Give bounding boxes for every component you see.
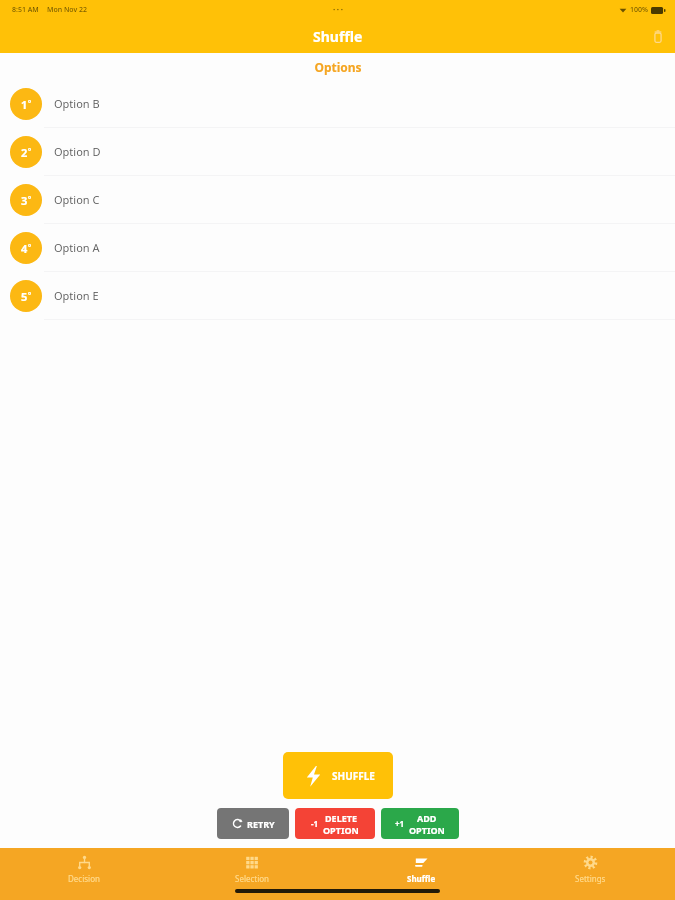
staticText: RETRY xyxy=(247,818,275,830)
staticText: Option B xyxy=(54,96,100,111)
staticText: º xyxy=(28,241,32,252)
staticText: OPTION xyxy=(323,824,359,836)
staticText: DELETE xyxy=(325,812,357,824)
staticText: Option A xyxy=(54,240,100,255)
button[interactable]: 5 xyxy=(0,272,675,320)
button[interactable]: +1 xyxy=(381,808,459,839)
staticText: Settings xyxy=(575,873,606,884)
staticText: +1 xyxy=(395,818,405,829)
staticText: Selection xyxy=(235,873,270,884)
staticText: 1 xyxy=(21,97,28,112)
staticText: -1 xyxy=(311,818,319,829)
staticText: 2 xyxy=(21,145,28,160)
staticText: Mon Nov 22 xyxy=(47,5,87,15)
staticText: Shuffle xyxy=(313,27,363,46)
button[interactable]: Shuffle xyxy=(337,848,506,900)
button[interactable]: SHUFFLE xyxy=(283,752,393,799)
staticText: Option D xyxy=(54,144,101,159)
staticText: OPTION xyxy=(409,824,445,836)
staticText: Options xyxy=(314,59,362,75)
staticText: 5 xyxy=(21,289,28,304)
staticText: º xyxy=(28,289,32,300)
staticText: º xyxy=(28,97,32,108)
button[interactable]: RETRY xyxy=(217,808,289,839)
staticText: • • • xyxy=(333,6,343,14)
staticText: Option C xyxy=(54,192,100,207)
staticText: ADD xyxy=(417,812,437,824)
staticText: º xyxy=(28,193,32,204)
button[interactable]: 3 xyxy=(0,176,675,224)
staticText: 100% xyxy=(630,5,648,15)
button[interactable]: Selection xyxy=(168,848,337,900)
button[interactable]: 4 xyxy=(0,224,675,272)
button[interactable]: Decision xyxy=(0,848,168,900)
button[interactable]: 2 xyxy=(0,128,675,176)
button[interactable]: Settings xyxy=(506,848,675,900)
staticText: 3 xyxy=(21,193,28,208)
staticText: º xyxy=(28,145,32,156)
staticText: Shuffle xyxy=(407,873,436,884)
button[interactable]: 1 xyxy=(0,80,675,128)
button[interactable]: Delete all options xyxy=(641,20,675,53)
button[interactable]: -1 xyxy=(295,808,375,839)
staticText: 4 xyxy=(21,241,28,256)
staticText: Decision xyxy=(68,873,100,884)
staticText: SHUFFLE xyxy=(332,769,375,783)
staticText: Option E xyxy=(54,288,99,303)
staticText: 8:51 AM xyxy=(12,5,39,15)
